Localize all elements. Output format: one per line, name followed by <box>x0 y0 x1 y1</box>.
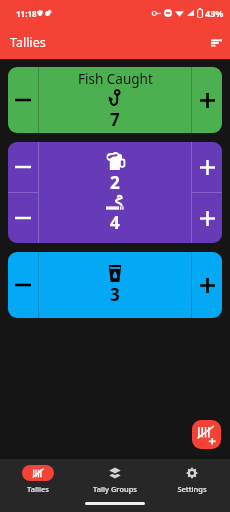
button[interactable]: Decrement <box>8 193 38 243</box>
staticText: Tallies <box>27 484 49 494</box>
button[interactable]: Decrement <box>8 67 38 133</box>
staticText: 43% <box>205 7 224 19</box>
staticText: 3 <box>110 283 120 306</box>
staticText: Fish Caught <box>78 70 153 88</box>
button[interactable]: Decrement <box>8 142 38 192</box>
button[interactable]: Add new tally <box>192 420 221 449</box>
button[interactable]: Sort <box>205 32 227 54</box>
staticText: Settings <box>177 484 207 494</box>
button[interactable]: Decrement <box>8 252 38 318</box>
staticText: 2 <box>110 171 120 194</box>
button[interactable]: Tallies <box>0 459 76 499</box>
button[interactable]: Settings <box>153 459 230 499</box>
button[interactable]: Tally Groups <box>76 459 153 499</box>
staticText: Tally Groups <box>93 484 137 494</box>
button[interactable]: Increment <box>192 142 222 192</box>
button[interactable]: Increment <box>192 252 222 318</box>
button[interactable]: Increment <box>192 193 222 243</box>
button[interactable]: Increment <box>192 67 222 133</box>
staticText: 11:18 <box>16 8 37 19</box>
staticText: 7 <box>110 108 120 131</box>
staticText: Tallies <box>10 34 46 51</box>
staticText: 4 <box>110 211 120 234</box>
